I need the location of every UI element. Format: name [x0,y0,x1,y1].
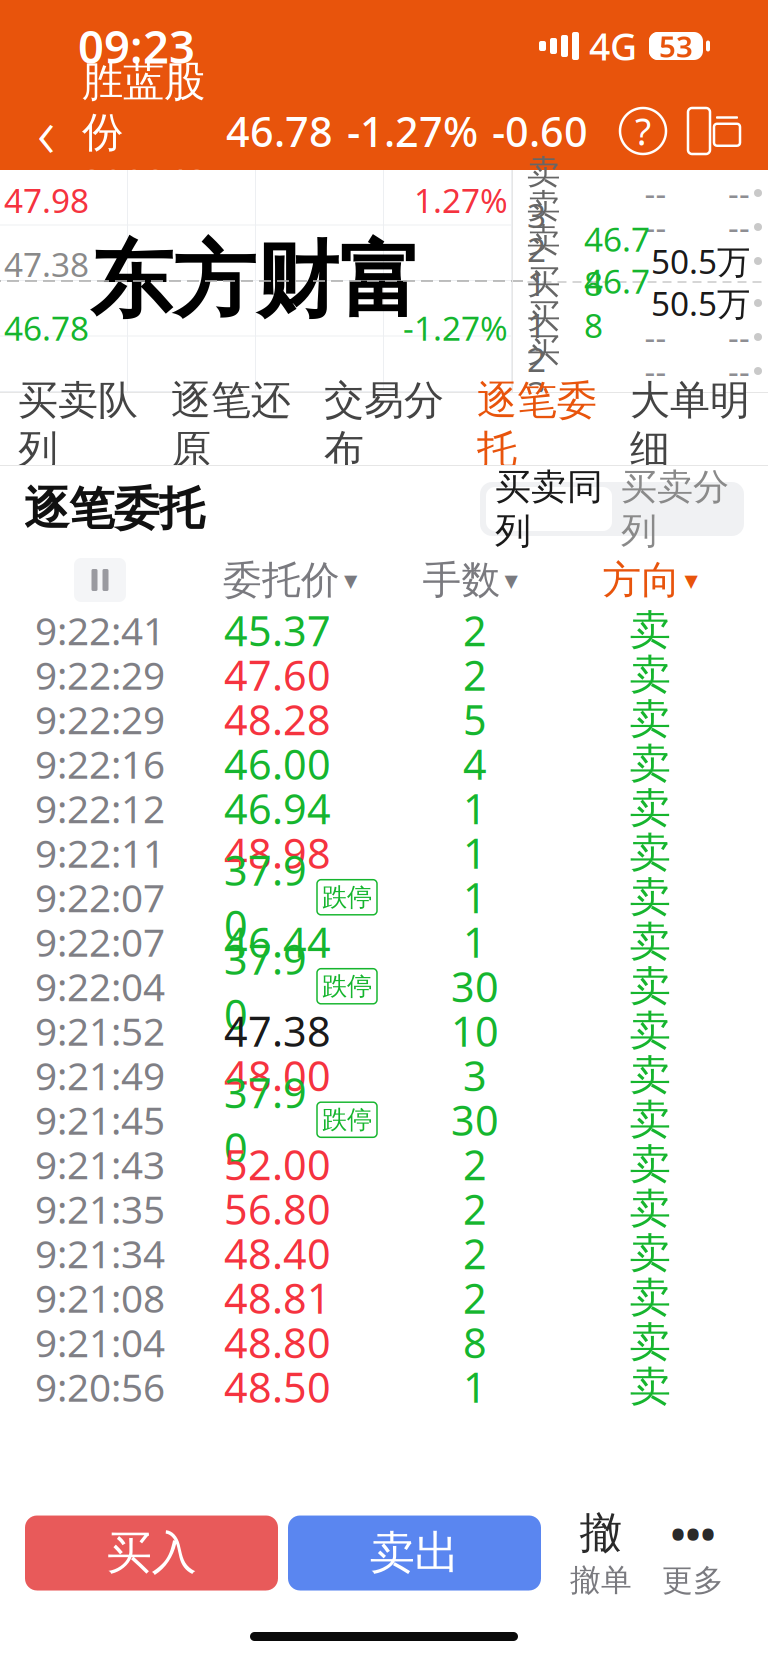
staticText: 2 [463,1181,487,1236]
staticText: 4 [463,736,487,791]
staticText: 8 [463,1315,487,1370]
staticText: 09:23 [78,16,195,76]
staticText: 50.5万 [651,239,750,283]
staticText: 卖 [629,827,670,878]
staticText: 46.44 [224,914,331,969]
staticText: ‹ [37,85,55,177]
staticText: 委托价 [223,556,340,604]
staticText: 9:22:29 [35,649,165,700]
staticText: 9:21:04 [35,1317,165,1368]
staticText: 卖 [629,1228,670,1279]
staticText: 卖 [629,605,670,656]
staticText: 48.81 [224,1270,331,1325]
button[interactable]: 买卖队列 [1,393,154,465]
staticText: 52.00 [224,1137,331,1192]
staticText: 48.28 [224,692,331,747]
staticText: 300843 [82,158,208,206]
button[interactable]: 买卖同列 [486,487,612,531]
staticText: 方向 [602,556,680,604]
button[interactable]: ••• [647,1512,739,1594]
button[interactable]: 返回 [16,96,76,166]
staticText: 买卖同列 [495,465,603,553]
staticText: 46.78 [4,306,89,350]
staticText: 卖 3 [527,149,560,237]
button[interactable]: 逐笔委托 [460,393,613,465]
staticText: 买 2 [527,293,560,381]
staticText: 逐笔委托 [477,376,597,474]
staticText: 逐笔委托 [24,481,204,537]
staticText: 跌停 [322,882,372,913]
button[interactable]: 手数 [380,555,560,605]
staticText: 9:21:34 [35,1228,165,1279]
staticText: 47.38 [224,1003,331,1058]
staticText: 1 [463,870,487,925]
staticText: 卖 [629,1183,670,1234]
staticText: -- [728,349,750,393]
staticText: 卖 [629,1317,670,1368]
staticText: 1 [463,1359,487,1414]
staticText: 卖 2 [527,183,560,271]
staticText: 卖 [629,1050,670,1101]
staticText: 37.90 [224,931,307,1041]
staticText: 45.37 [224,603,331,658]
staticText: ? [635,106,651,156]
staticText: ••• [670,1507,715,1560]
staticText: 9:21:35 [35,1183,165,1234]
button[interactable]: 逐笔还原 [154,393,307,465]
staticText: 9:21:43 [35,1139,165,1190]
staticText: 47.60 [224,647,331,702]
button[interactable]: 帮助 [620,108,666,154]
staticText: 48.40 [224,1226,331,1281]
staticText: 48.80 [224,1315,331,1370]
staticText: 4G [589,21,637,71]
staticText: 46.78 [226,104,333,158]
staticText: 48.98 [224,825,331,880]
staticText: 56.80 [224,1181,331,1236]
staticText: ▾ [344,565,357,595]
button[interactable]: 方向 [560,555,740,605]
staticText: 9:21:52 [35,1005,165,1056]
button[interactable]: 交易分布 [307,393,460,465]
staticText: 10 [451,1003,499,1058]
staticText: 大单明细 [630,376,750,474]
button[interactable]: 买入 [25,1515,278,1590]
staticText: 9:22:07 [35,916,165,967]
staticText: 2 [463,603,487,658]
button[interactable]: 撤 [555,1512,647,1594]
staticText: 46.78 [584,259,650,347]
staticText: -- [728,171,750,215]
staticText: -- [644,315,666,359]
staticText: 卖 [629,1361,670,1412]
staticText: 9:22:12 [35,783,165,834]
staticText: 30 [451,1092,499,1147]
button[interactable]: 卖出 [288,1515,541,1590]
staticText: 9:21:49 [35,1050,165,1101]
staticText: 1.27% [414,178,508,222]
staticText: 撤 [579,1507,622,1559]
staticText: 跌停 [322,971,372,1002]
staticText: 买 1 [527,259,560,347]
staticText: 3 [463,1048,487,1103]
staticText: 48.00 [224,1048,331,1103]
staticText: 2 [463,1270,487,1325]
staticText: 交易分布 [324,376,444,474]
staticText: 47.98 [4,178,89,222]
button[interactable]: 委托价 [200,555,380,605]
staticText: 46.94 [224,781,331,836]
staticText: 1 [463,825,487,880]
staticText: 卖 [629,649,670,700]
button[interactable]: 大单明细 [613,393,766,465]
staticText: 9:21:45 [35,1094,165,1145]
button[interactable]: 暂停 [74,558,126,602]
staticText: 46.78 [584,217,650,305]
staticText: 9:22:07 [35,872,165,923]
staticText: 9:22:04 [35,961,165,1012]
button[interactable]: 买卖分列 [612,487,738,531]
staticText: 卖 1 [527,217,560,305]
staticText: 2 [463,1137,487,1192]
staticText: 卖 [629,783,670,834]
staticText: 买卖队列 [18,376,138,474]
staticText: 37.90 [224,1065,307,1175]
staticText: 卖 [629,1139,670,1190]
button[interactable]: 横屏 [682,101,746,161]
